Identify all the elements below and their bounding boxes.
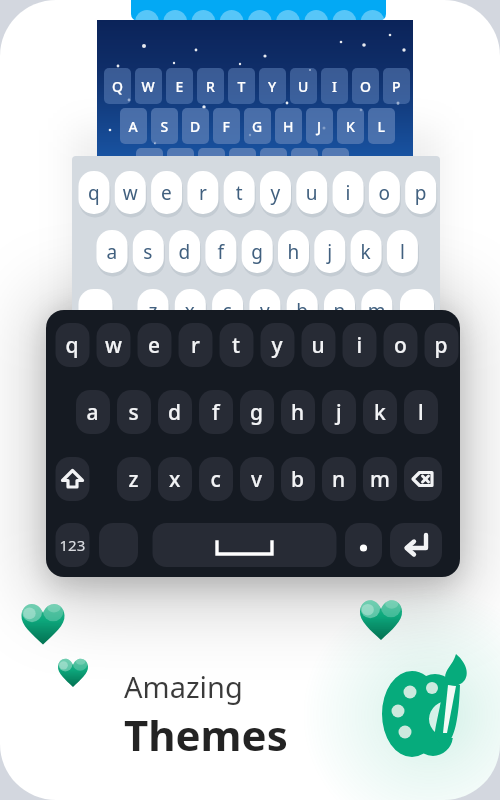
staticText: Themes — [124, 706, 288, 763]
staticText: Amazing — [124, 667, 243, 706]
